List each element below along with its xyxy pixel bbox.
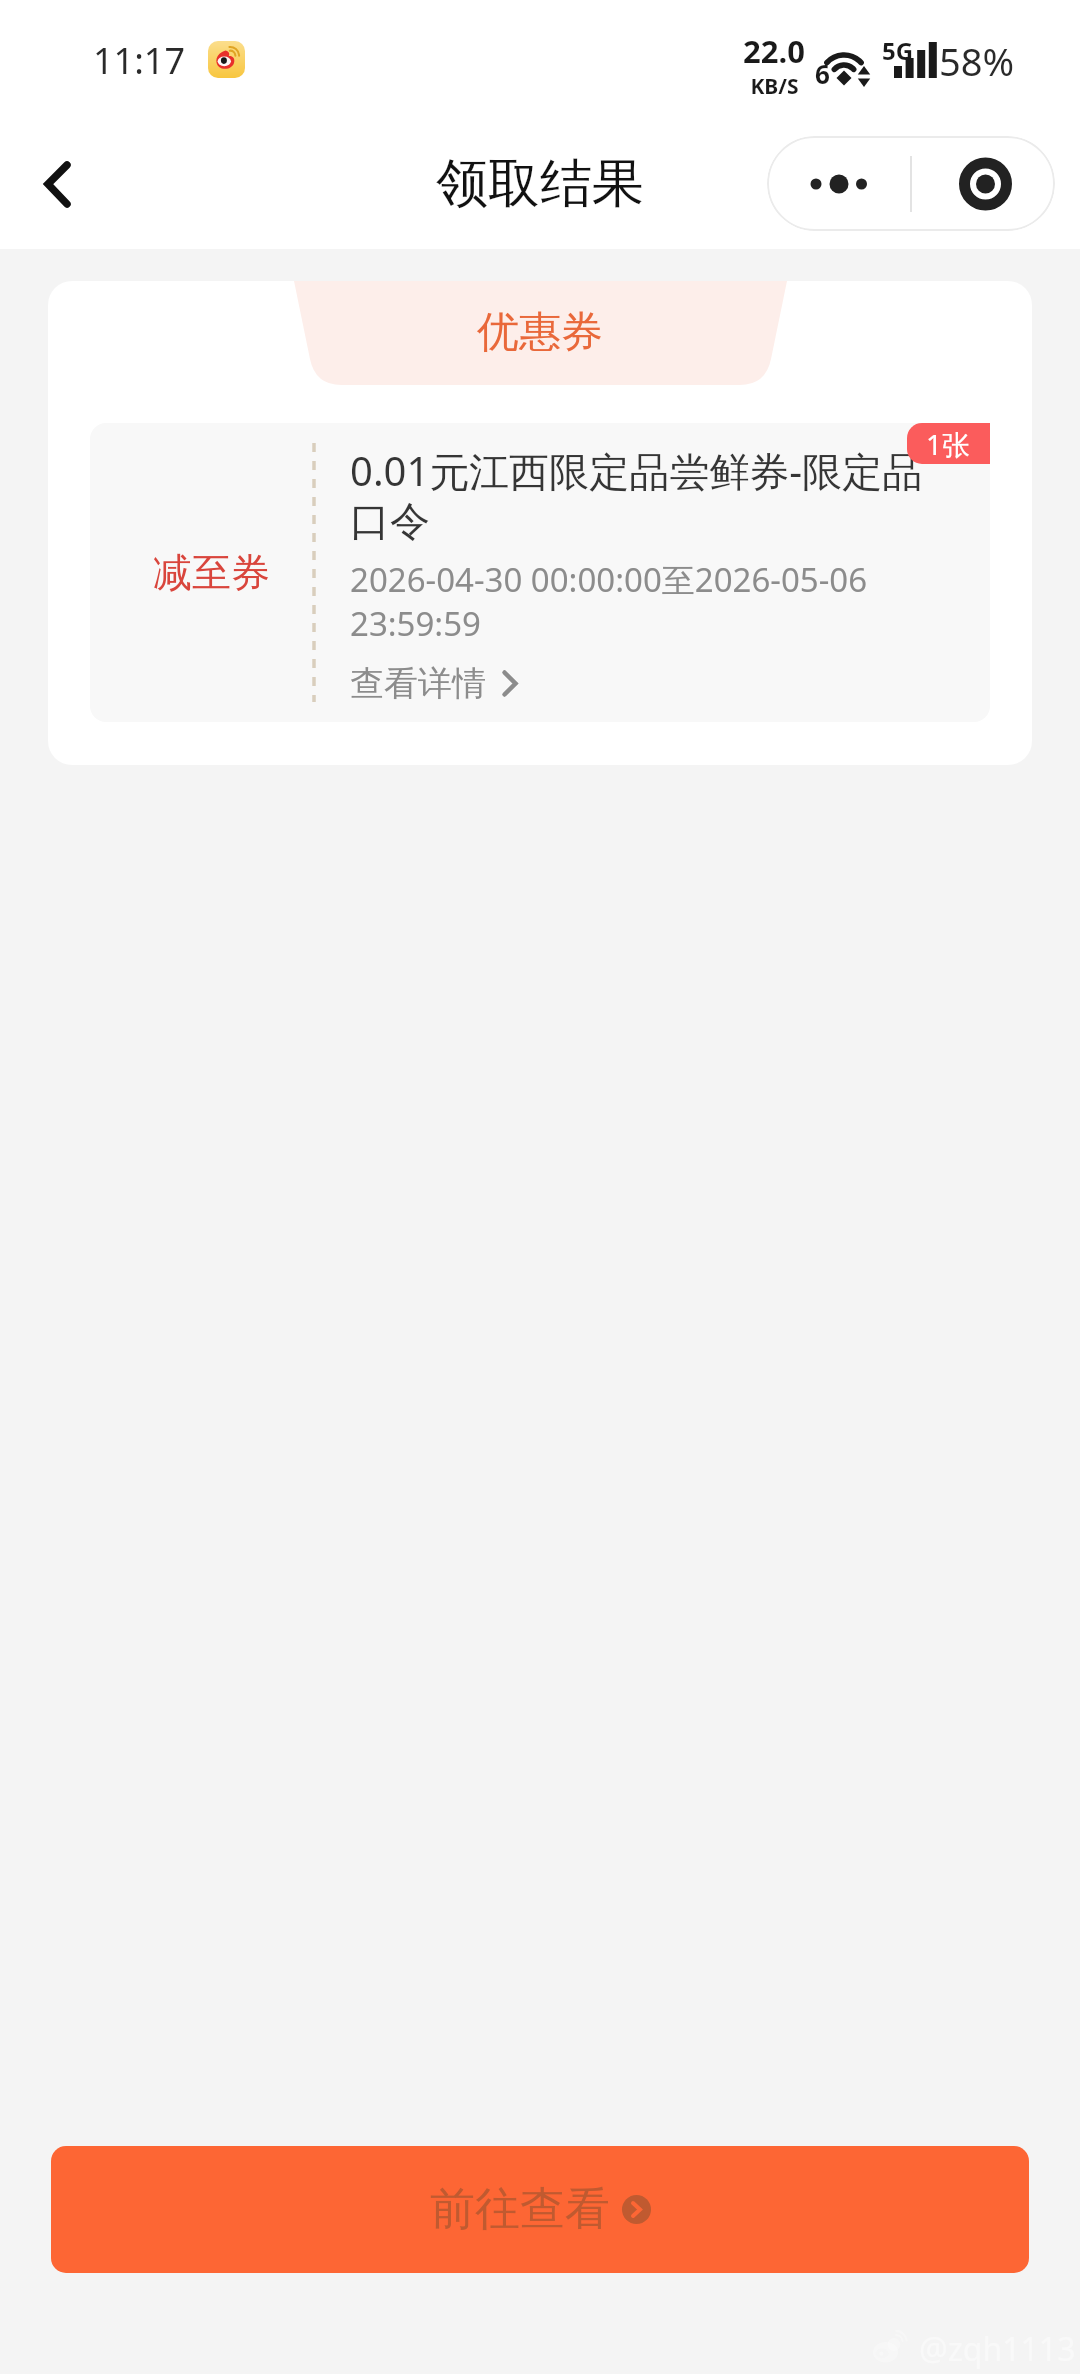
- staticText: 1张: [926, 425, 971, 463]
- staticText: 58%: [939, 35, 1015, 87]
- staticText: 0.01元江西限定品尝鲜券-限定品口令: [350, 443, 950, 546]
- staticText: 22.0: [743, 30, 805, 72]
- staticText: 优惠券: [477, 306, 603, 359]
- button[interactable]: Back: [12, 149, 82, 219]
- button[interactable]: 前往查看: [51, 2146, 1029, 2273]
- staticText: KB/S: [750, 72, 799, 101]
- staticText: 查看详情: [350, 662, 486, 705]
- button[interactable]: More options: [767, 136, 917, 231]
- staticText: 领取结果: [436, 151, 644, 217]
- staticText: 5G: [882, 34, 914, 67]
- button[interactable]: Close mini program: [917, 136, 1055, 231]
- staticText: 减至券: [153, 548, 270, 597]
- staticText: 2026-04-30 00:00:00至2026-05-06 23:59:59: [350, 557, 950, 646]
- button[interactable]: 减至券: [90, 423, 990, 722]
- staticText: 前往查看: [430, 2181, 610, 2238]
- staticText: 11:17: [93, 36, 186, 85]
- staticText: 6: [815, 56, 830, 91]
